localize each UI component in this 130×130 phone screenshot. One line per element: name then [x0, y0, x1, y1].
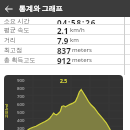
staticText: 통계와 그래프 [19, 4, 63, 14]
staticText: 04:58:26 [57, 17, 97, 24]
button[interactable]: 소요 시간 [0, 17, 130, 25]
button[interactable]: 총 획득고도 [0, 55, 130, 65]
staticText: 600 [17, 101, 25, 107]
staticText: 400 [17, 117, 25, 123]
staticText: 최고점 [4, 46, 22, 54]
staticText: 총 획득고도 [4, 56, 36, 64]
staticText: 7.9 [57, 35, 69, 44]
staticText: meters [72, 46, 92, 54]
staticText: 300 [17, 125, 25, 130]
staticText: 500 [17, 109, 25, 115]
staticText: 900 [17, 77, 25, 83]
staticText: 2.5 [60, 78, 68, 85]
staticText: 거리 [4, 36, 16, 44]
staticText: 837 [57, 45, 71, 54]
staticText: meters [72, 56, 92, 64]
staticText: 평균 속도 [4, 26, 30, 34]
button[interactable]: Back [0, 0, 17, 17]
staticText: 800 [17, 85, 25, 91]
staticText: km [70, 36, 79, 44]
button[interactable]: 거리 [0, 35, 130, 45]
staticText: 912 [57, 55, 71, 64]
staticText: 고도(m) [4, 103, 9, 118]
staticText: 소요 시간 [4, 17, 30, 24]
staticText: 700 [17, 93, 25, 99]
staticText: 2.1 [57, 25, 69, 34]
button[interactable]: 평균 속도 [0, 25, 130, 35]
button[interactable]: 최고점 [0, 45, 130, 55]
staticText: km/h [70, 26, 85, 34]
